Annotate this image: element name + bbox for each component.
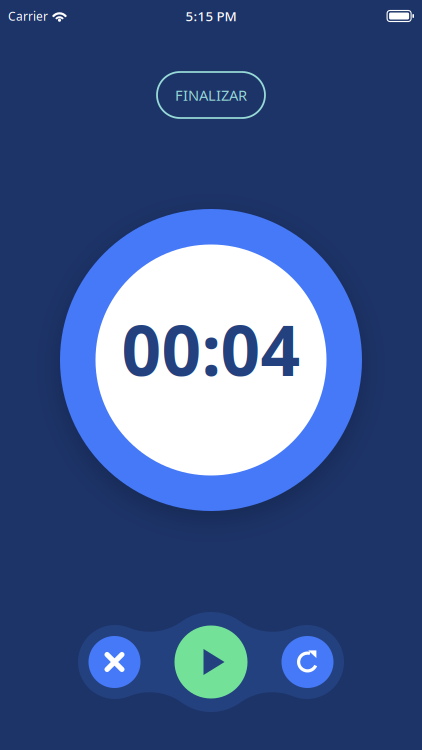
button[interactable]: Restart	[281, 636, 333, 688]
staticText: 00:04	[121, 303, 300, 395]
staticText: 5:15 PM	[185, 7, 236, 25]
staticText: Carrier	[8, 8, 48, 24]
button[interactable]: Play	[174, 625, 247, 698]
staticText: FINALIZAR	[175, 85, 247, 105]
button[interactable]: FINALIZAR	[157, 72, 265, 118]
button[interactable]: Cancel	[88, 636, 140, 688]
